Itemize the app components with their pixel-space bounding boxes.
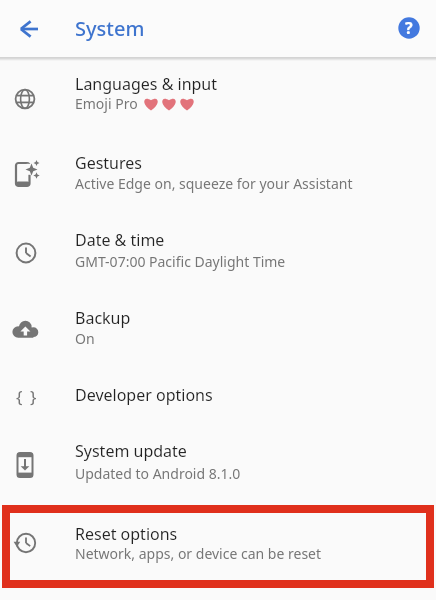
button[interactable]: Languages & input	[0, 61, 436, 139]
staticText: On	[75, 329, 95, 348]
staticText: ?	[405, 17, 413, 39]
staticText: Active Edge on, squeeze for your Assista…	[75, 174, 353, 193]
staticText: Emoji Pro	[75, 94, 138, 113]
staticText: Reset options	[75, 523, 178, 545]
staticText: Gestures	[75, 152, 142, 174]
staticText: }	[30, 385, 37, 408]
staticText: Updated to Android 8.1.0	[75, 464, 241, 483]
button[interactable]: ?	[398, 17, 420, 39]
button[interactable]: {	[0, 371, 436, 426]
button[interactable]: System update	[0, 426, 436, 503]
staticText: GMT-07:00 Pacific Daylight Time	[75, 252, 286, 271]
staticText: Network, apps, or device can be reset	[75, 544, 322, 563]
staticText: System update	[75, 440, 187, 462]
button[interactable]: Backup	[0, 294, 436, 371]
button[interactable]: Date & time	[0, 216, 436, 294]
staticText: Date & time	[75, 229, 165, 251]
staticText: Languages & input	[75, 73, 218, 95]
button[interactable]	[0, 5, 48, 53]
button[interactable]: Reset options	[0, 505, 436, 588]
staticText: {	[16, 385, 23, 408]
staticText: System	[75, 15, 145, 42]
staticText: Developer options	[75, 384, 213, 406]
staticText: Backup	[75, 307, 131, 329]
button[interactable]: Gestures	[0, 139, 436, 216]
